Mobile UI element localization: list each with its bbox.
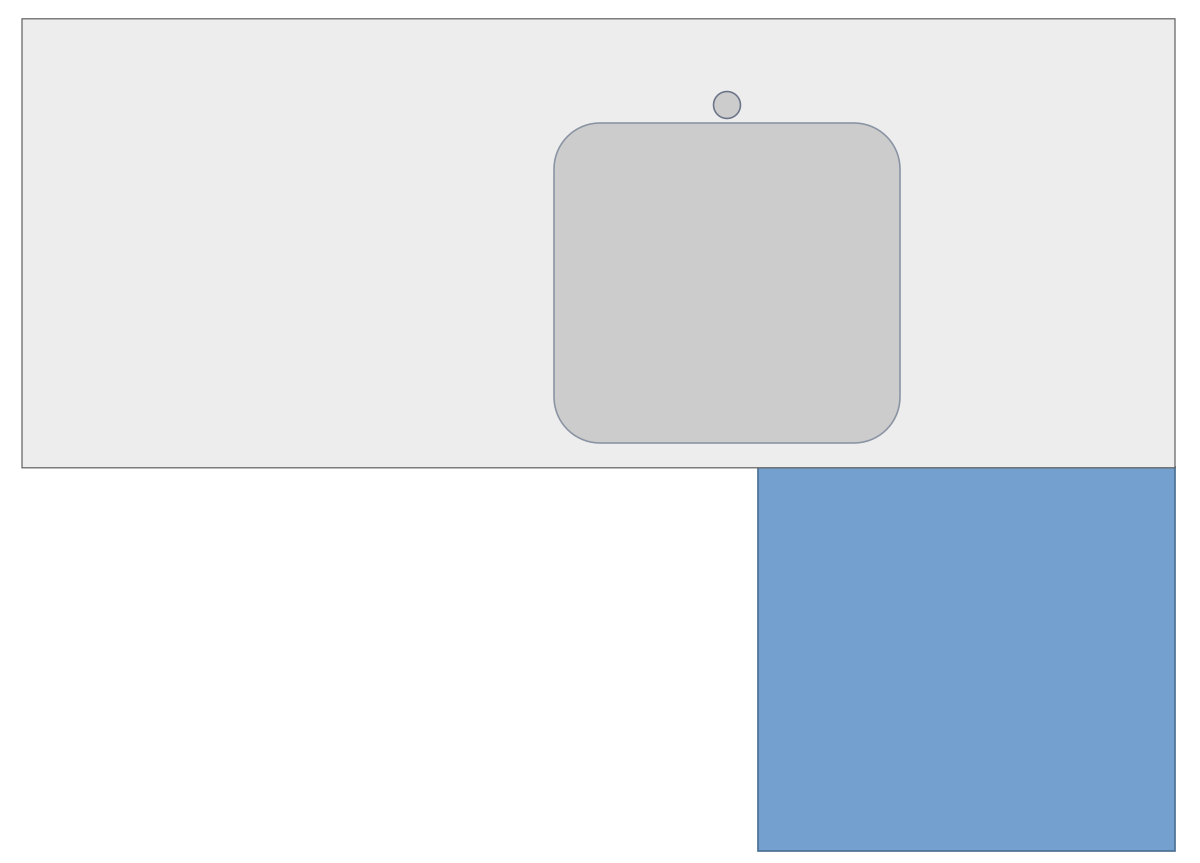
button[interactable]: Blue panel — [758, 467, 1175, 851]
button[interactable]: Tile — [554, 123, 900, 443]
